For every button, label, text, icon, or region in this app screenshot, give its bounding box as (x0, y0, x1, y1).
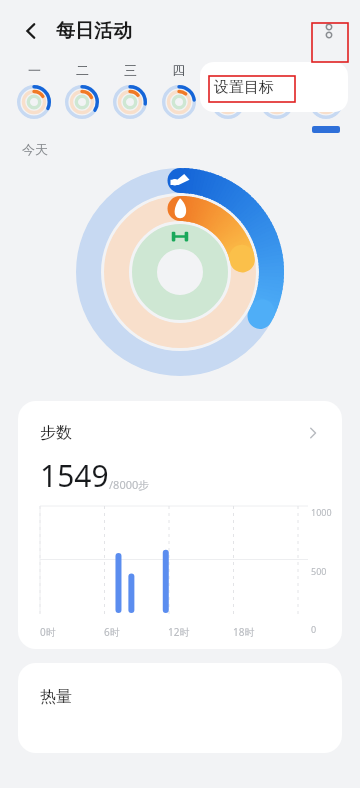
staticText: 二 (76, 62, 89, 78)
button[interactable]: 热量 (18, 663, 342, 753)
button[interactable] (301, 83, 350, 133)
staticText: 三 (124, 62, 137, 78)
button[interactable]: 设置目标 (200, 62, 348, 112)
staticText: 1549 (40, 455, 109, 496)
button[interactable] (252, 83, 301, 133)
staticText: 步数 (40, 423, 72, 443)
staticText: 一 (28, 62, 41, 78)
button[interactable] (106, 83, 154, 133)
button[interactable]: 更多选项 (310, 12, 348, 50)
staticText: 设置目标 (214, 78, 274, 97)
staticText: 四 (172, 62, 185, 78)
staticText: 日 (319, 62, 332, 78)
button[interactable] (154, 83, 203, 133)
staticText: 1000 (311, 506, 332, 518)
staticText: 18时 (233, 625, 255, 639)
staticText: 热量 (40, 687, 72, 707)
staticText: 今天 (22, 141, 48, 157)
button[interactable] (58, 83, 106, 133)
button[interactable]: 返回 (14, 14, 48, 48)
staticText: 0时 (40, 625, 56, 639)
staticText: 500 (311, 565, 327, 577)
staticText: 0 (311, 623, 317, 635)
staticText: 12时 (168, 625, 190, 639)
staticText: 六 (270, 62, 283, 78)
staticText: /8000步 (109, 477, 150, 492)
staticText: 每日活动 (56, 19, 132, 43)
button[interactable]: 步数 (18, 401, 342, 649)
button[interactable] (10, 83, 58, 133)
staticText: 6时 (104, 625, 120, 639)
button[interactable] (203, 83, 252, 133)
staticText: 五 (221, 62, 234, 78)
